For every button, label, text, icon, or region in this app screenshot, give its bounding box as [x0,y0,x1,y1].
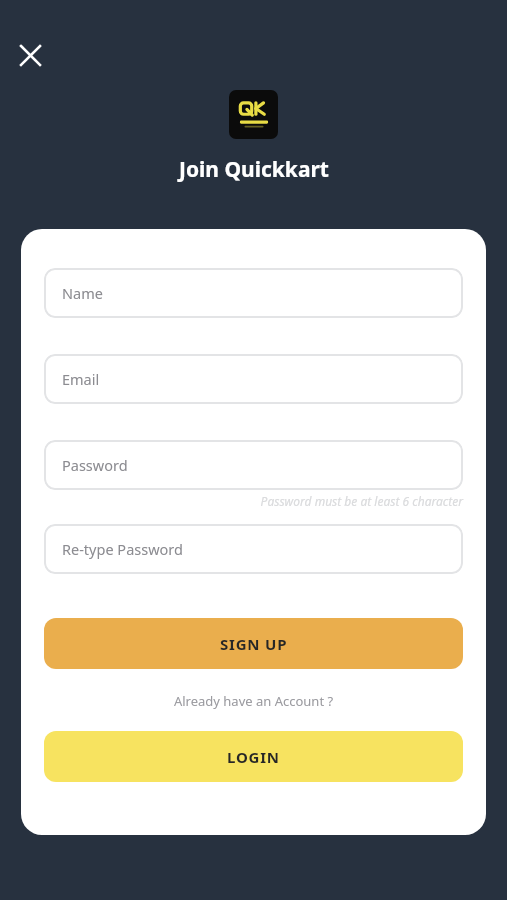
staticText: SIGN UP [220,634,288,654]
staticText: Re-type Password [62,539,183,559]
button[interactable]: Close [12,37,48,73]
button[interactable]: Email [44,354,463,404]
button[interactable]: Password [44,440,463,490]
button[interactable]: LOGIN [44,731,463,782]
button[interactable]: Name [44,268,463,318]
button[interactable]: SIGN UP [44,618,463,669]
staticText: Join Quickkart [179,155,329,184]
staticText: Password must be at least 6 character [44,493,463,509]
staticText: Email [62,369,100,389]
button[interactable]: Already have an Account ? [44,692,463,710]
staticText: LOGIN [227,747,280,767]
staticText: Name [62,283,103,303]
staticText: Password [62,455,128,475]
button[interactable]: Re-type Password [44,524,463,574]
